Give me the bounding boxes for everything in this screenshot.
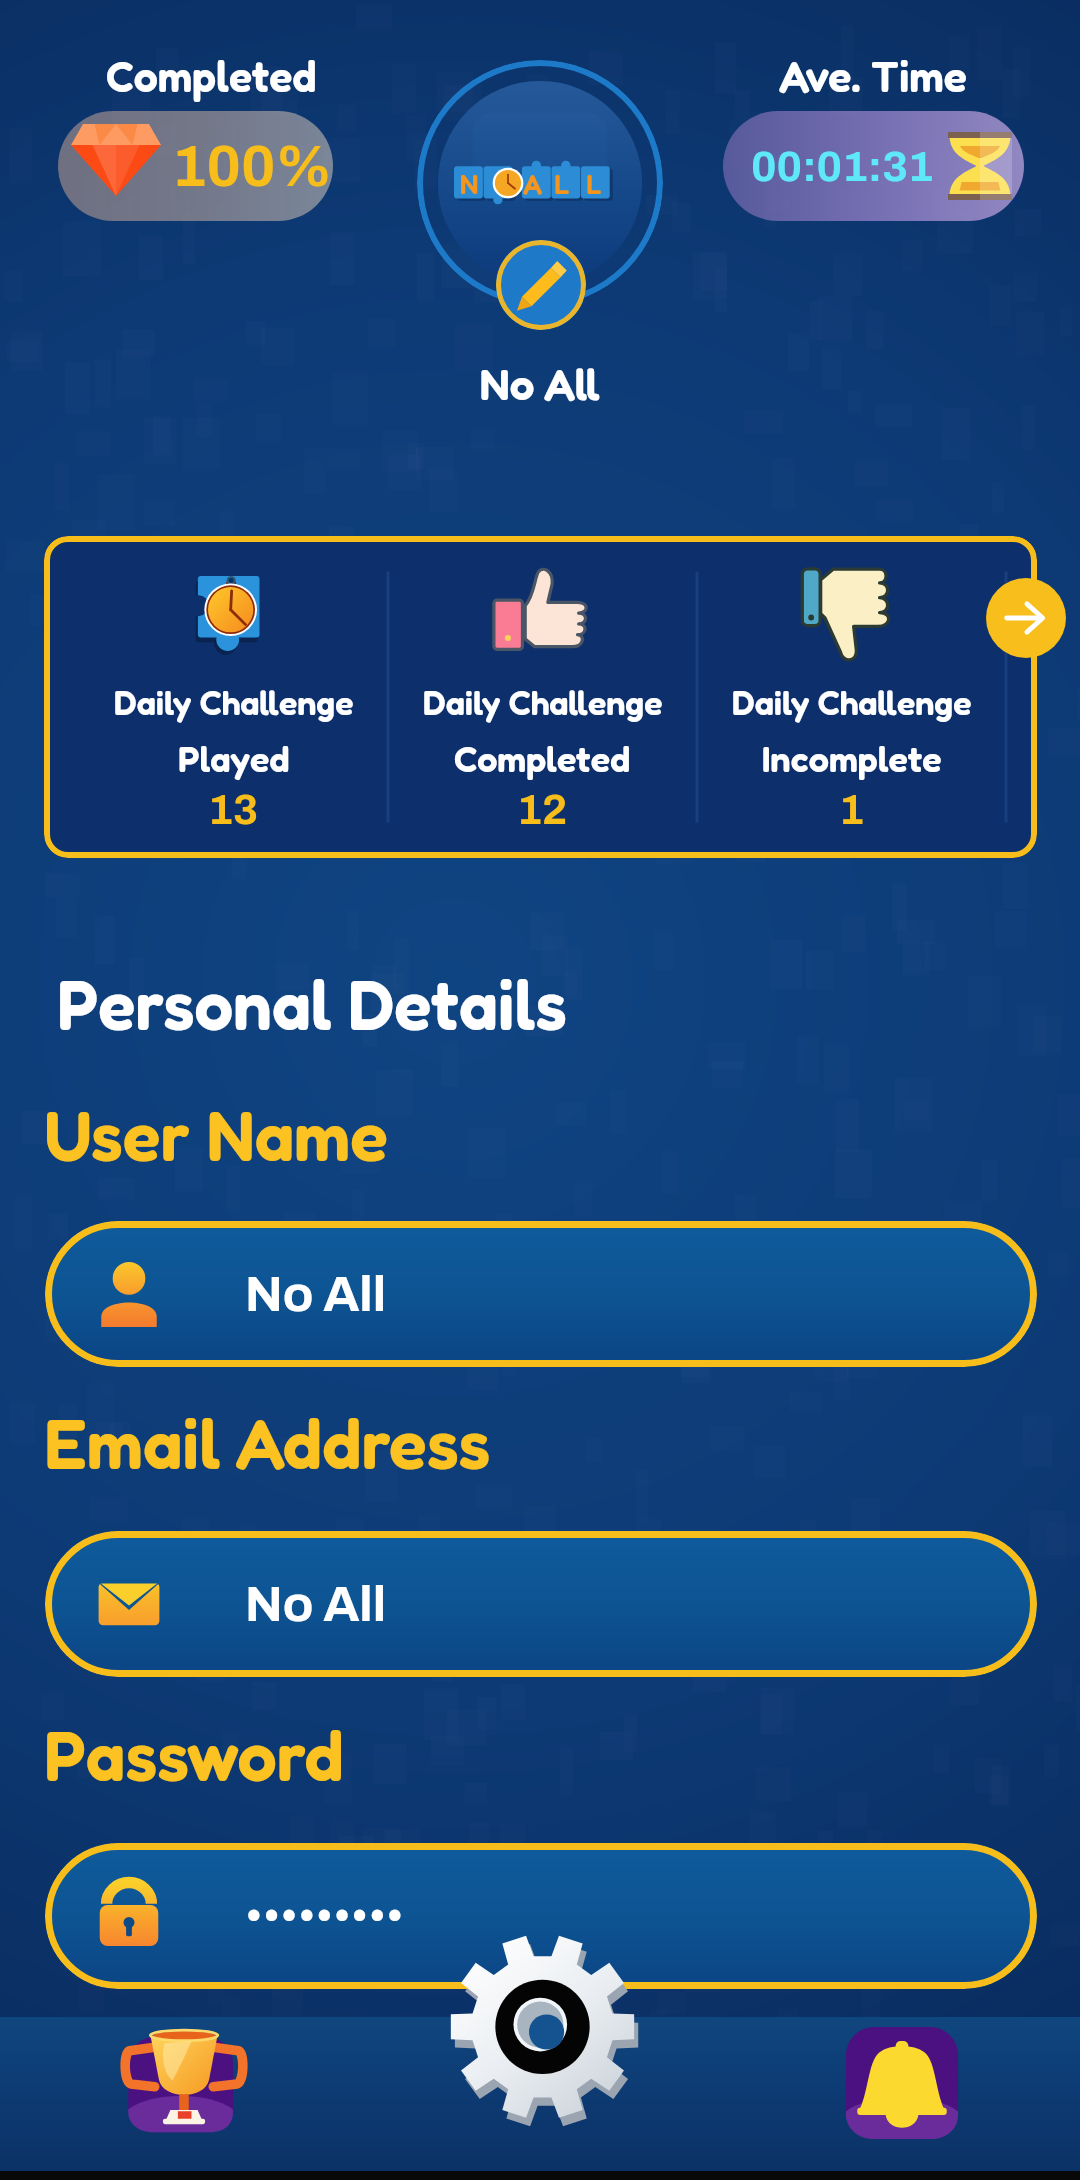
button[interactable]: Daily Challenge xyxy=(79,536,388,858)
button[interactable]: Edit profile xyxy=(496,240,586,330)
staticText: ••••••••• xyxy=(245,1894,404,1938)
button[interactable]: Notifications xyxy=(831,2012,973,2154)
button[interactable]: Trophy xyxy=(116,2014,252,2150)
button[interactable]: No All xyxy=(45,1221,1037,1367)
button[interactable]: No All xyxy=(45,1531,1037,1677)
staticText: User Name xyxy=(44,1092,388,1177)
button[interactable]: Profile avatar xyxy=(417,60,663,306)
button[interactable]: Next xyxy=(986,578,1066,658)
staticText: Email Address xyxy=(44,1400,491,1485)
staticText: Password xyxy=(44,1712,344,1797)
button[interactable]: Settings xyxy=(450,1938,635,2123)
button[interactable]: ••••••••• xyxy=(45,1843,1037,1989)
staticText: 00:01:31 xyxy=(751,143,934,190)
staticText: 1 xyxy=(839,787,865,833)
button[interactable]: 100% xyxy=(58,111,333,221)
staticText: 12 xyxy=(517,787,568,833)
button[interactable]: Daily Challenge xyxy=(388,536,697,858)
staticText: Daily Challenge xyxy=(732,682,972,723)
staticText: Played xyxy=(178,737,290,781)
staticText: Completed xyxy=(454,737,631,781)
staticText: 100% xyxy=(172,135,333,198)
staticText: Completed xyxy=(106,50,317,102)
staticText: Daily Challenge xyxy=(114,682,354,723)
staticText: L xyxy=(586,168,602,201)
staticText: L xyxy=(554,168,570,201)
staticText: Ave. Time xyxy=(779,50,967,102)
staticText: No All xyxy=(245,1577,387,1631)
button[interactable]: 00:01:31 xyxy=(723,111,1024,221)
staticText: Personal Details xyxy=(57,962,567,1045)
button[interactable]: Daily Challenge xyxy=(697,536,1006,858)
staticText: Daily Challenge xyxy=(423,682,663,723)
staticText: No All xyxy=(245,1267,387,1321)
staticText: N xyxy=(460,168,479,201)
staticText: A xyxy=(523,168,543,201)
staticText: No All xyxy=(0,357,1080,410)
staticText: 13 xyxy=(208,787,259,833)
staticText: Incomplete xyxy=(762,737,942,781)
